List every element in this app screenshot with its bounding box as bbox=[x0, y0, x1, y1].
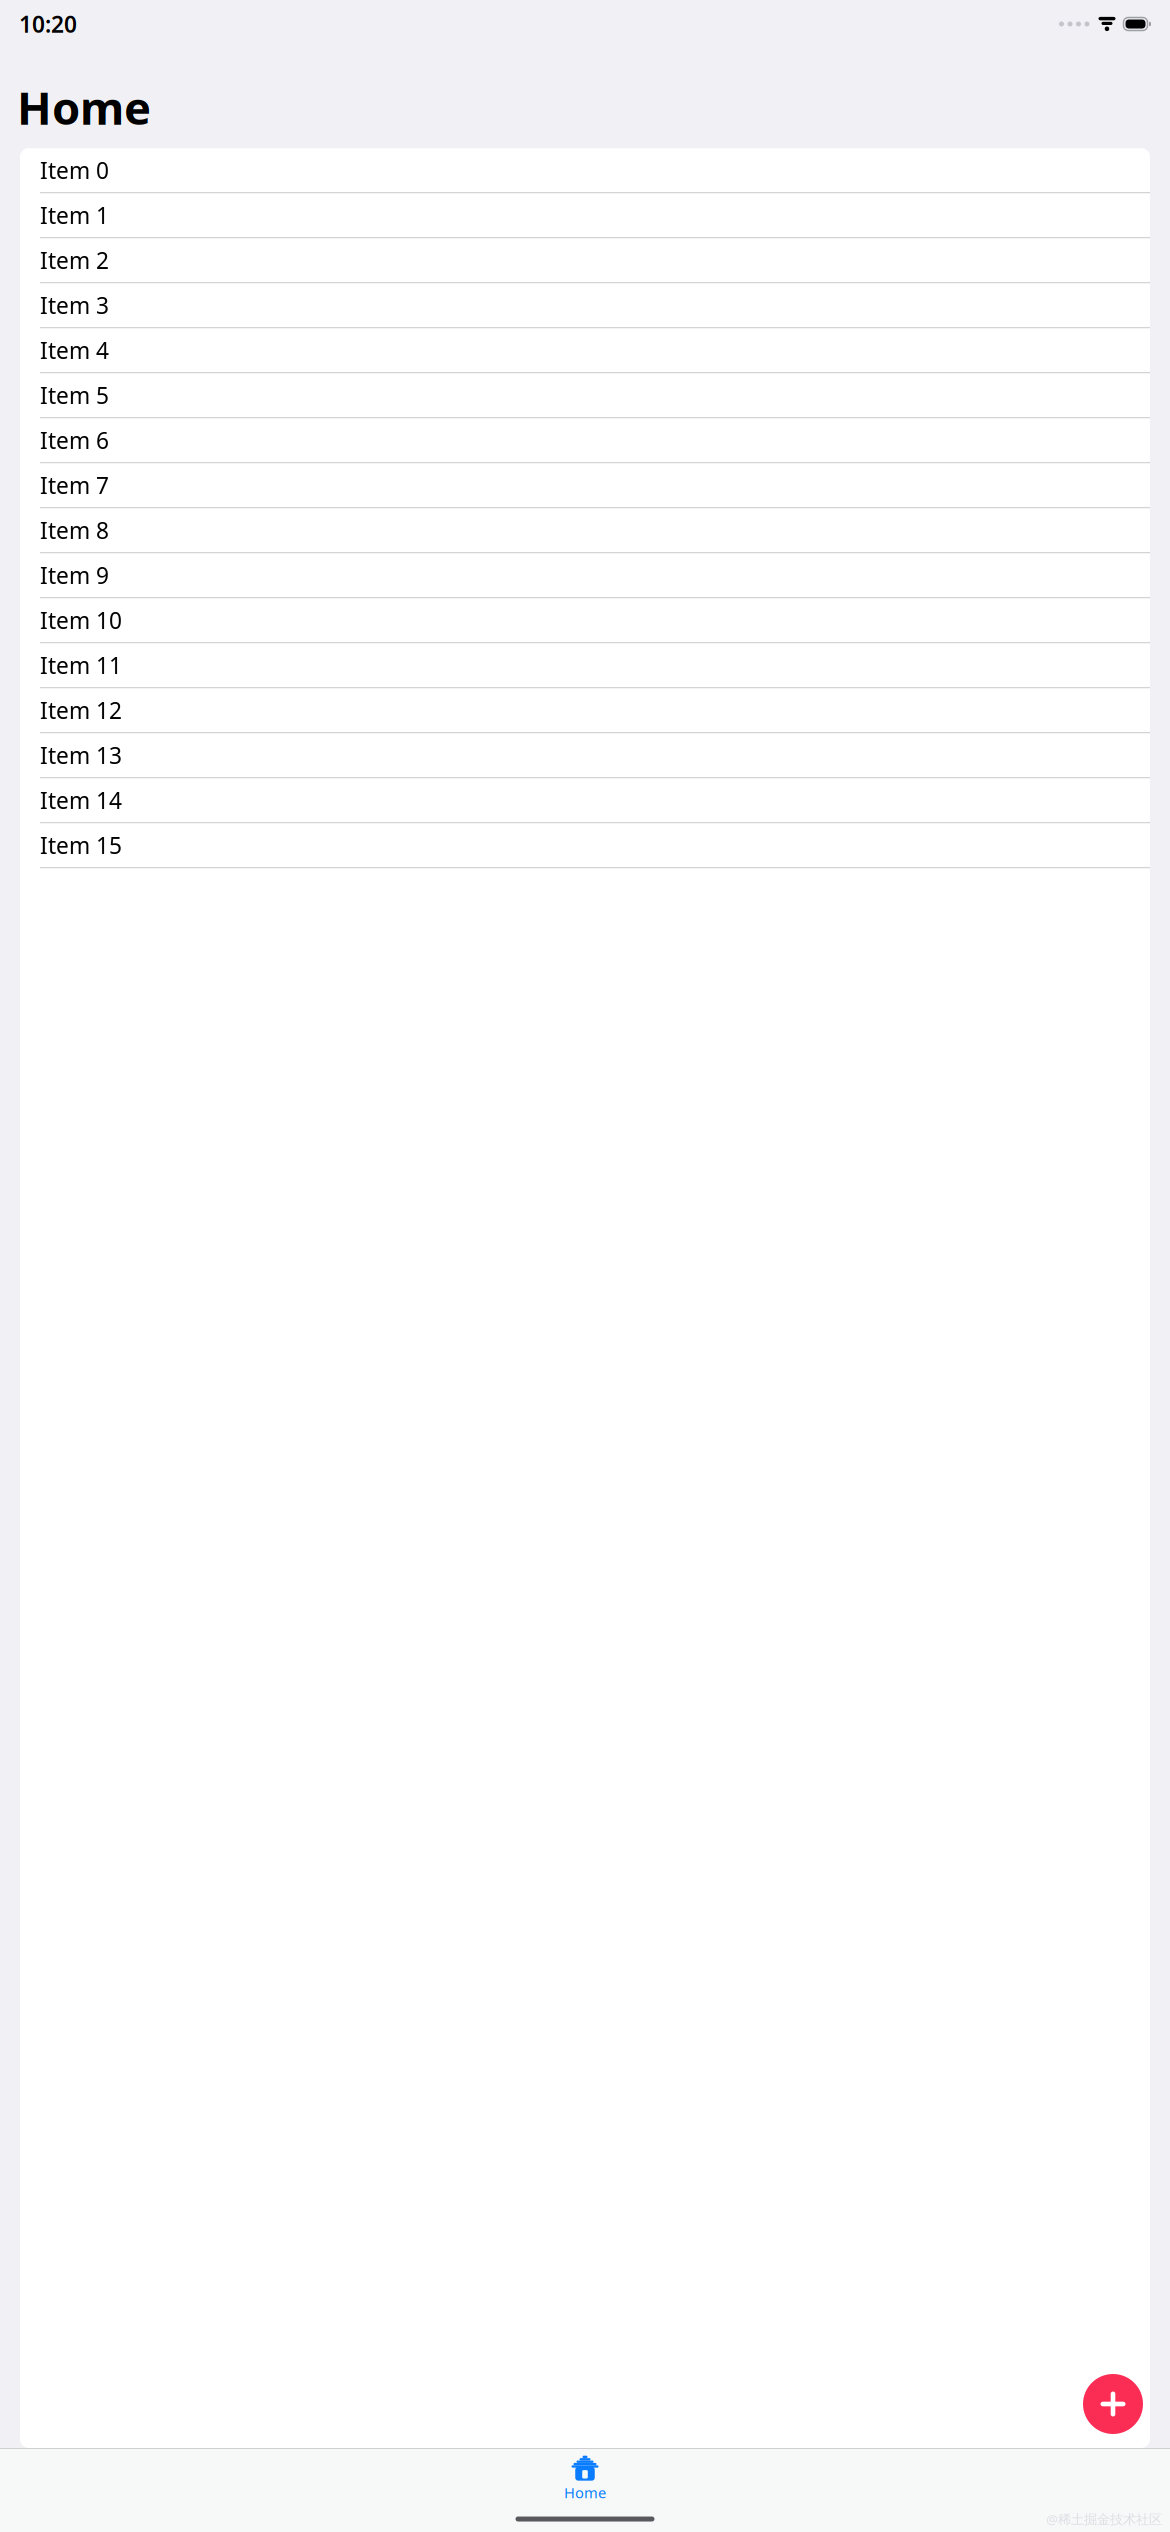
button[interactable]: Home bbox=[0, 2449, 1170, 2504]
button[interactable]: Item 9 bbox=[20, 553, 1150, 598]
staticText: Item 11 bbox=[40, 650, 122, 680]
staticText: Home bbox=[564, 2483, 606, 2502]
button[interactable]: Item 10 bbox=[20, 598, 1150, 643]
button[interactable]: Item 11 bbox=[20, 643, 1150, 688]
button[interactable]: Item 7 bbox=[20, 463, 1150, 508]
staticText: Item 14 bbox=[40, 785, 122, 815]
button[interactable]: Item 4 bbox=[20, 328, 1150, 373]
staticText: Item 6 bbox=[40, 425, 109, 455]
staticText: Item 15 bbox=[40, 830, 122, 860]
button[interactable]: Add item bbox=[1083, 2374, 1143, 2434]
button[interactable]: Item 5 bbox=[20, 373, 1150, 418]
button[interactable]: Item 13 bbox=[20, 733, 1150, 778]
button[interactable]: Item 1 bbox=[20, 193, 1150, 238]
staticText: Home bbox=[17, 77, 151, 137]
staticText: Item 2 bbox=[40, 245, 109, 275]
staticText: Item 4 bbox=[40, 335, 109, 365]
staticText: Item 0 bbox=[40, 155, 109, 185]
staticText: Item 9 bbox=[40, 560, 109, 590]
staticText: Item 12 bbox=[40, 695, 122, 725]
staticText: Item 10 bbox=[40, 605, 122, 635]
staticText: Item 13 bbox=[40, 740, 122, 770]
button[interactable]: Item 8 bbox=[20, 508, 1150, 553]
staticText: Item 8 bbox=[40, 515, 109, 545]
staticText: Item 7 bbox=[40, 470, 109, 500]
button[interactable]: Item 15 bbox=[20, 823, 1150, 868]
staticText: 10:20 bbox=[19, 9, 77, 39]
button[interactable]: Item 3 bbox=[20, 283, 1150, 328]
button[interactable]: Item 14 bbox=[20, 778, 1150, 823]
staticText: @稀土掘金技术社区 bbox=[1046, 2510, 1162, 2528]
button[interactable]: Item 12 bbox=[20, 688, 1150, 733]
button[interactable]: Item 2 bbox=[20, 238, 1150, 283]
staticText: Item 1 bbox=[40, 200, 109, 230]
button[interactable]: Item 6 bbox=[20, 418, 1150, 463]
staticText: Item 3 bbox=[40, 290, 109, 320]
staticText: Item 5 bbox=[40, 380, 109, 410]
button[interactable]: Item 0 bbox=[20, 148, 1150, 193]
